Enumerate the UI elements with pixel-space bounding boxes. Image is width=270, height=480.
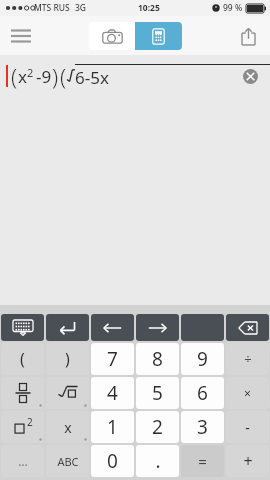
staticText: ) (65, 348, 70, 370)
button[interactable]: 9 (181, 343, 224, 375)
button[interactable]: Move left (91, 314, 134, 341)
button[interactable]: 8 (136, 343, 179, 375)
button[interactable]: 2 (136, 411, 179, 443)
button[interactable]: ) (46, 343, 89, 375)
button[interactable]: … (1, 445, 44, 477)
button[interactable]: Share (231, 19, 265, 53)
staticText: - (245, 418, 250, 437)
button[interactable]: Camera (89, 22, 135, 50)
button[interactable]: Backspace (226, 314, 269, 341)
staticText: x (64, 418, 72, 437)
staticText: 4 (107, 380, 118, 406)
staticText: 2 (152, 414, 163, 440)
button[interactable]: - (226, 411, 269, 443)
button[interactable]: 5 (136, 377, 179, 409)
staticText: ( (11, 61, 18, 91)
staticText: … (18, 453, 28, 469)
button[interactable]: = (181, 445, 224, 477)
button[interactable]: × (226, 377, 269, 409)
staticText: + (243, 450, 253, 472)
button[interactable]: 1 (91, 411, 134, 443)
staticText: 6-5x (75, 66, 109, 89)
staticText: = (198, 451, 207, 471)
button[interactable]: ABC (46, 445, 89, 477)
staticText: 99 % (223, 2, 243, 14)
staticText: x (18, 65, 27, 88)
staticText: 9 (197, 346, 208, 372)
staticText: 3 (197, 414, 208, 440)
button[interactable]: Menu (4, 19, 38, 53)
button[interactable]: + (226, 445, 269, 477)
button[interactable]: 0 (91, 445, 134, 477)
staticText: ( (20, 348, 25, 370)
staticText: 8 (152, 346, 163, 372)
staticText: . (155, 448, 161, 474)
staticText: 6 (197, 380, 208, 406)
staticText: × (244, 385, 251, 401)
button[interactable]: ( (1, 343, 44, 375)
button[interactable]: Power (1, 411, 44, 443)
staticText: 7 (107, 346, 118, 372)
staticText: 5 (152, 380, 163, 406)
staticText: MTS RUS (34, 2, 70, 14)
button[interactable]: Fraction (1, 377, 44, 409)
staticText: 10:25 (138, 2, 160, 14)
staticText: 0 (107, 448, 118, 474)
staticText: ( (60, 61, 67, 91)
button[interactable]: Clear (238, 64, 262, 88)
button[interactable]: 3 (181, 411, 224, 443)
staticText: ÷ (244, 350, 252, 368)
button[interactable]: x (46, 411, 89, 443)
staticText: -9 (36, 65, 52, 88)
button[interactable]: . (136, 445, 179, 477)
staticText: 2 (27, 65, 34, 80)
staticText: 3G (75, 2, 87, 14)
staticText: ) (52, 61, 59, 91)
button[interactable]: Calculator (135, 22, 182, 50)
staticText: ABC (57, 454, 79, 469)
button[interactable]: 4 (91, 377, 134, 409)
button[interactable]: Square root (46, 377, 89, 409)
button[interactable]: 7 (91, 343, 134, 375)
staticText: 1 (107, 414, 118, 440)
button[interactable]: Move right (136, 314, 179, 341)
button[interactable]: Enter (46, 314, 89, 341)
staticText: 2 (27, 415, 33, 429)
button[interactable]: 6 (181, 377, 224, 409)
button[interactable]: ÷ (226, 343, 269, 375)
button[interactable]: Key (181, 314, 224, 341)
button[interactable]: Hide keyboard (1, 314, 44, 341)
